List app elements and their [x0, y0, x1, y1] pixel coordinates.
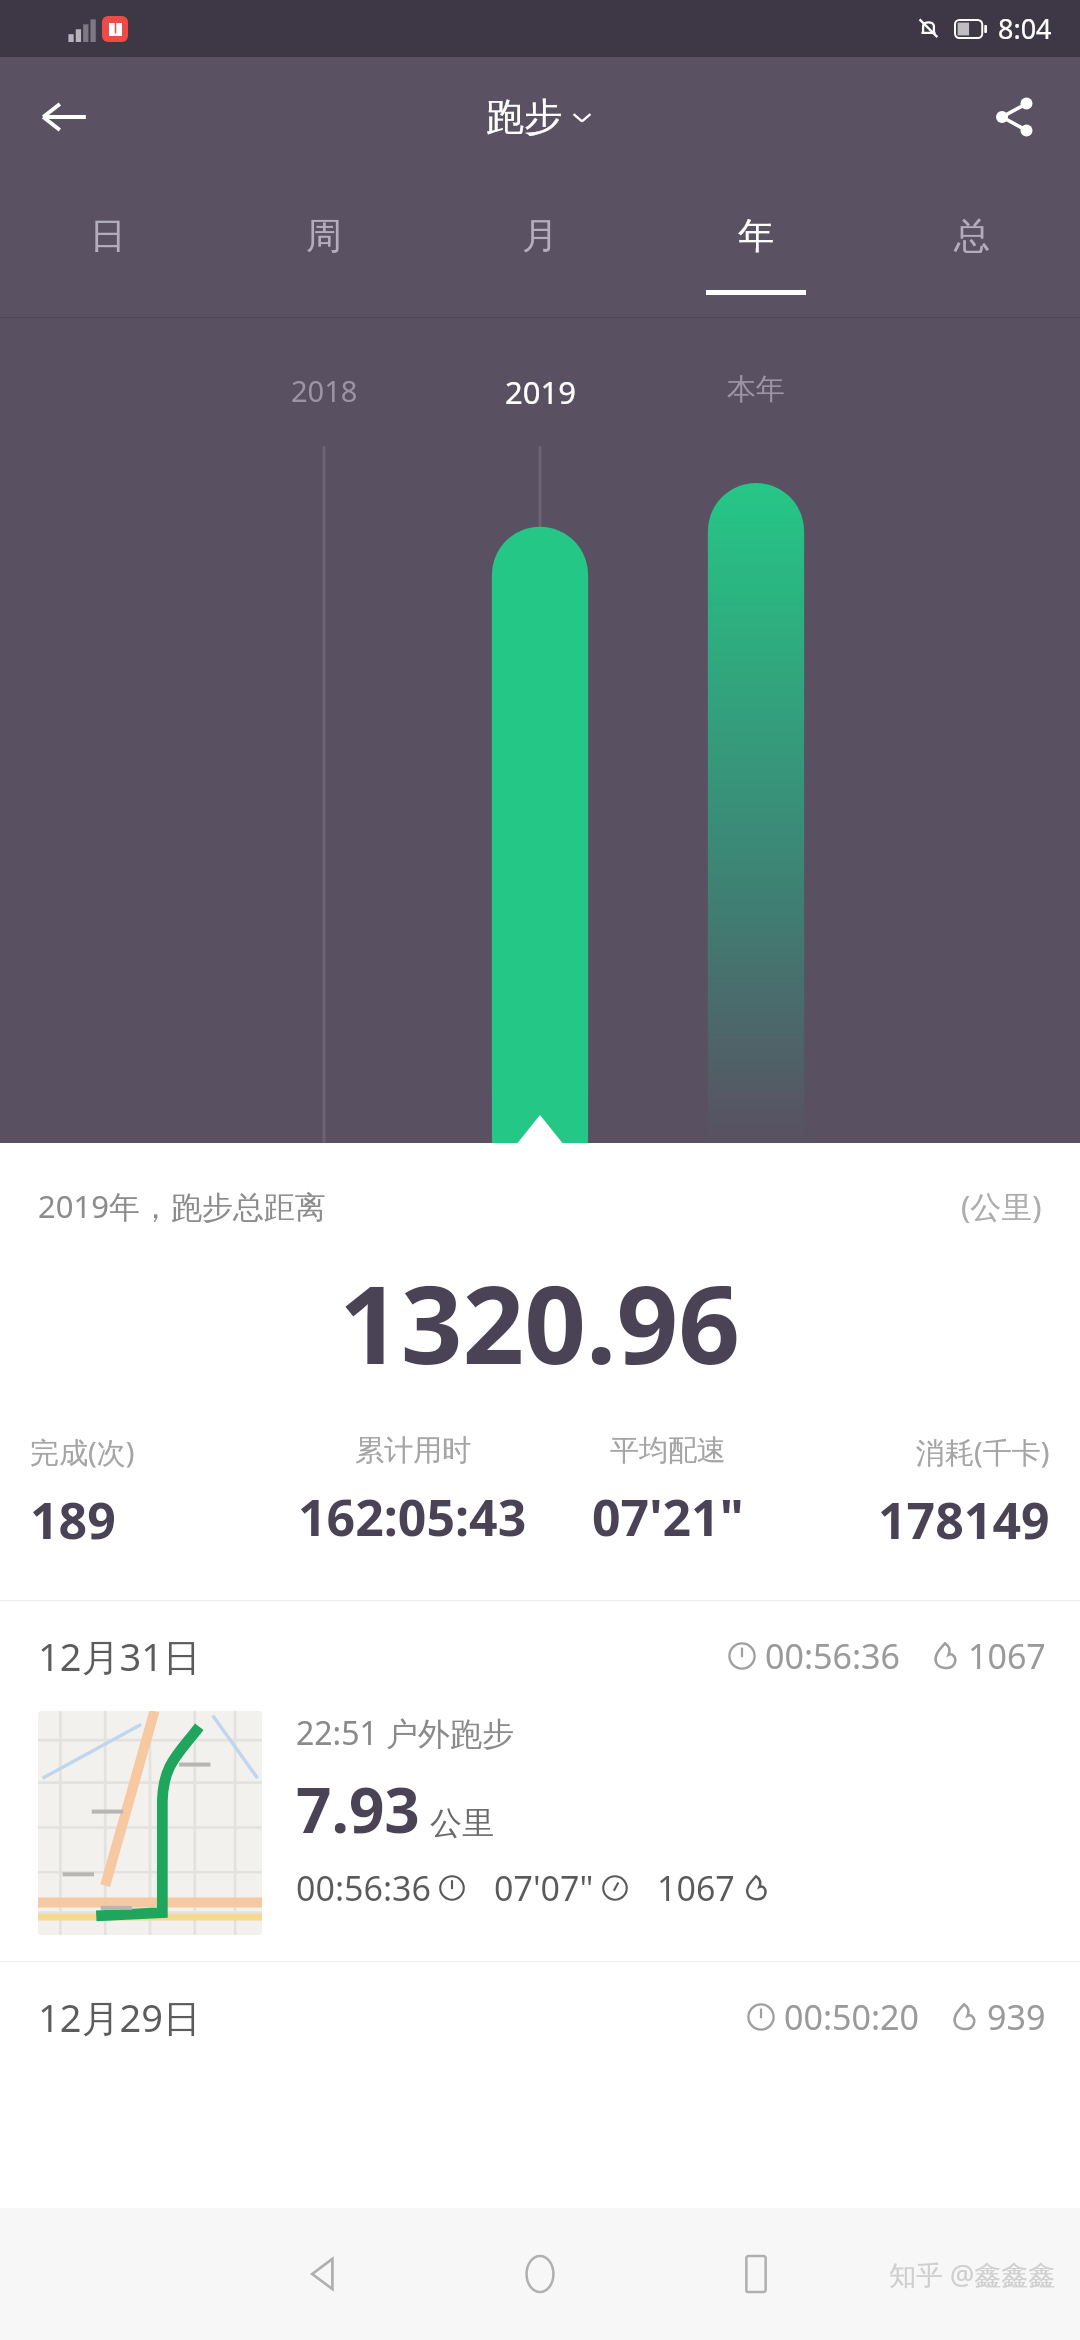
staticText: 12月31日: [38, 1630, 201, 1682]
staticText: 8:04: [998, 10, 1052, 47]
button[interactable]: Back: [216, 2208, 432, 2340]
button[interactable]: 12月29日: [0, 1962, 1080, 2072]
button[interactable]: 日: [0, 176, 216, 318]
staticText: 939: [987, 1994, 1046, 2040]
staticText: 22:51 户外跑步: [296, 1711, 515, 1755]
staticText: (公里): [961, 1185, 1042, 1227]
button[interactable]: 12月31日: [0, 1601, 1080, 1711]
staticText: 公里: [430, 1803, 494, 1843]
button[interactable]: 22:51 户外跑步: [0, 1711, 1080, 1961]
staticText: 年: [738, 213, 774, 258]
staticText: 总: [954, 213, 990, 258]
staticText: 完成(次): [30, 1432, 135, 1472]
staticText: 累计用时: [355, 1432, 471, 1469]
button[interactable]: 跑步: [486, 93, 594, 141]
button[interactable]: 周: [216, 176, 432, 318]
other: Battery: [954, 19, 988, 39]
staticText: 2018: [291, 371, 358, 410]
staticText: 07'21": [592, 1483, 744, 1551]
staticText: 07'07": [494, 1865, 594, 1911]
staticText: 7.93: [296, 1767, 420, 1851]
button[interactable]: Back: [24, 77, 104, 157]
button[interactable]: Share: [974, 77, 1054, 157]
staticText: 12月29日: [38, 1991, 201, 2043]
staticText: 1067: [657, 1865, 735, 1911]
staticText: 日: [90, 213, 126, 258]
staticText: 月: [522, 213, 558, 258]
staticText: 00:56:36: [765, 1633, 900, 1679]
staticText: 00:50:20: [784, 1994, 919, 2040]
button[interactable]: 总: [864, 176, 1080, 318]
staticText: 1320.96: [339, 1249, 741, 1396]
staticText: 2019年，跑步总距离: [38, 1185, 326, 1227]
button[interactable]: Recents: [648, 2208, 864, 2340]
staticText: 2019: [505, 371, 576, 413]
other: Silent: [915, 15, 942, 42]
staticText: 平均配速: [610, 1432, 726, 1469]
staticText: 00:56:36: [296, 1865, 431, 1911]
staticText: 周: [306, 213, 342, 258]
staticText: 162:05:43: [298, 1483, 527, 1551]
staticText: 消耗(千卡): [916, 1432, 1050, 1472]
staticText: 1067: [968, 1633, 1046, 1679]
button[interactable]: 年: [648, 176, 864, 318]
staticText: 本年: [727, 371, 785, 408]
staticText: 189: [30, 1486, 116, 1554]
button[interactable]: Home: [432, 2208, 648, 2340]
button[interactable]: 月: [432, 176, 648, 318]
staticText: 跑步: [486, 93, 562, 141]
staticText: 178149: [878, 1486, 1050, 1554]
staticText: 知乎 @鑫鑫鑫: [889, 2256, 1056, 2293]
